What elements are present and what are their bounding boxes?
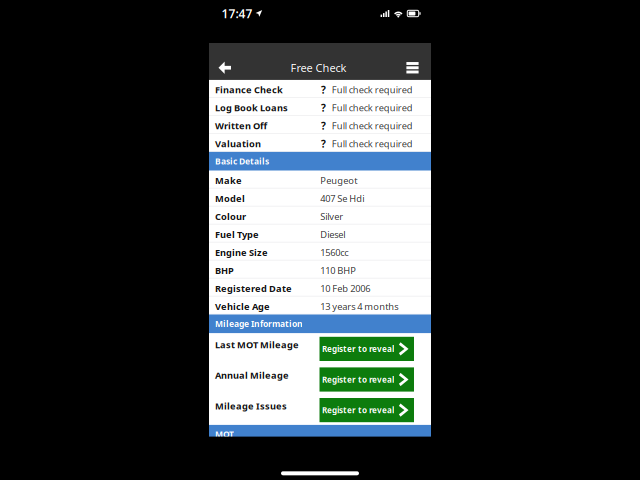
staticText: Annual Mileage	[215, 369, 289, 381]
staticText: Full check required	[332, 101, 413, 114]
staticText: Mileage Issues	[215, 399, 287, 412]
staticText: ?	[321, 119, 326, 133]
staticText: Full check required	[332, 83, 413, 96]
staticText: Make	[215, 174, 242, 187]
staticText: Peugeot	[320, 174, 357, 187]
staticText: BHP	[215, 264, 234, 277]
staticText: Basic Details	[215, 155, 269, 167]
staticText: Mileage Information	[215, 318, 303, 330]
staticText: 13 years 4 months	[320, 300, 398, 313]
staticText: 17:47	[222, 5, 253, 22]
staticText: Register to reveal	[322, 405, 394, 416]
button[interactable]: Register to reveal	[319, 367, 414, 392]
staticText: 110 BHP	[320, 264, 356, 277]
staticText: Full check required	[332, 119, 413, 132]
staticText: Register to reveal	[322, 374, 394, 385]
staticText: Engine Size	[215, 246, 268, 259]
staticText: ?	[321, 83, 326, 97]
staticText: Register to reveal	[322, 343, 394, 354]
button[interactable]: Back	[218, 56, 252, 80]
staticText: MOT	[215, 428, 234, 440]
staticText: Registered Date	[215, 282, 292, 295]
staticText: Diesel	[320, 228, 345, 241]
staticText: Vehicle Age	[215, 300, 270, 313]
button[interactable]: Register to reveal	[319, 337, 414, 361]
staticText: Valuation	[215, 137, 261, 150]
staticText: 1560cc	[320, 246, 348, 259]
staticText: Colour	[215, 210, 246, 223]
button[interactable]: Register to reveal	[319, 398, 414, 422]
staticText: ?	[321, 101, 326, 115]
staticText: Last MOT Mileage	[215, 338, 299, 351]
staticText: Model	[215, 192, 245, 205]
staticText: Log Book Loans	[215, 101, 288, 114]
staticText: Finance Check	[215, 83, 283, 96]
button[interactable]: Menu	[385, 56, 419, 80]
staticText: Silver	[320, 210, 343, 223]
staticText: Full check required	[332, 137, 413, 150]
staticText: 10 Feb 2006	[320, 282, 370, 295]
staticText: ?	[321, 137, 326, 151]
staticText: Written Off	[215, 119, 267, 132]
staticText: Fuel Type	[215, 228, 259, 241]
staticText: 407 Se Hdi	[320, 192, 364, 205]
staticText: Free Check	[291, 60, 347, 75]
